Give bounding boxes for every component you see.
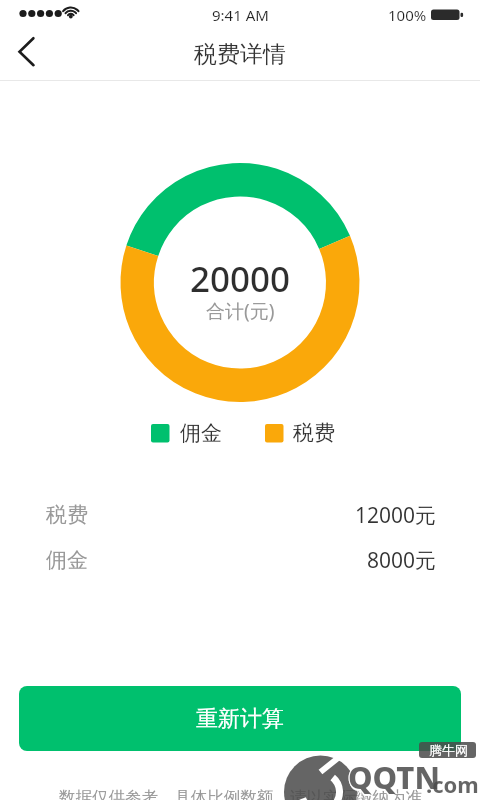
button[interactable]: 重新计算: [19, 686, 461, 751]
staticText: 合计(元): [206, 298, 275, 324]
staticText: 佣金: [180, 420, 222, 446]
button[interactable]: [0, 28, 56, 80]
staticText: 腾牛网: [429, 742, 468, 758]
staticText: 税费详情: [194, 40, 286, 69]
staticText: QQTN: [347, 756, 439, 798]
staticText: 12000元: [355, 501, 437, 530]
staticText: QQTN: [348, 758, 440, 800]
staticText: .com: [426, 769, 479, 799]
staticText: 税费: [293, 420, 335, 446]
staticText: QQTN: [348, 756, 440, 798]
staticText: 9:41 AM: [212, 5, 269, 25]
staticText: 佣金: [46, 547, 88, 573]
staticText: 税费: [46, 502, 88, 528]
staticText: 数据仅供参考，具体比例数额，请以实际缴纳为准: [59, 787, 422, 800]
staticText: 100%: [388, 5, 427, 25]
staticText: QQTN: [348, 755, 440, 797]
staticText: 20000: [190, 255, 291, 303]
staticText: QQTN: [350, 756, 442, 798]
staticText: 重新计算: [196, 705, 284, 733]
staticText: 8000元: [367, 546, 437, 575]
